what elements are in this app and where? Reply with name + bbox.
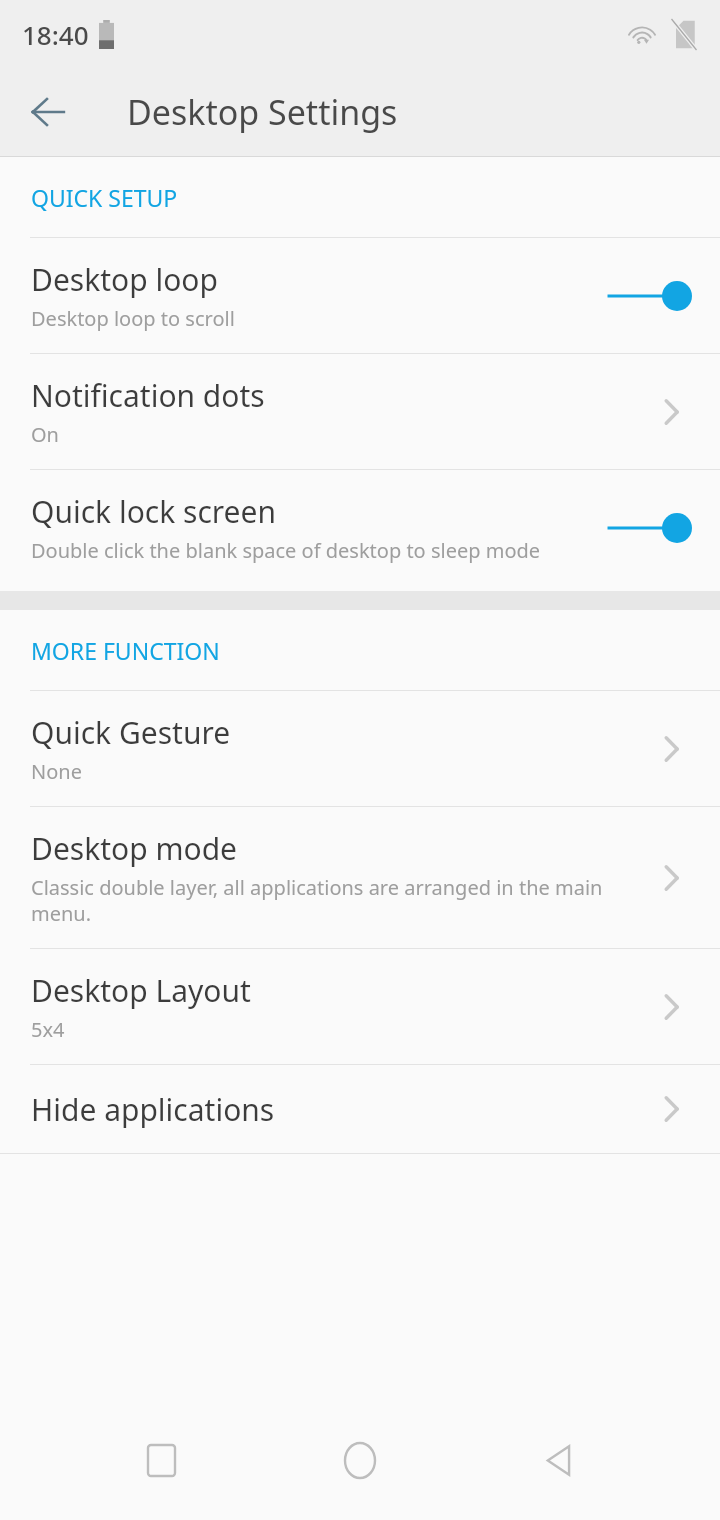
button[interactable]: Desktop Layout <box>0 949 720 1064</box>
staticText: MORE FUNCTION <box>31 635 220 666</box>
button[interactable]: Home <box>322 1422 398 1498</box>
staticText: On <box>31 421 59 448</box>
staticText: QUICK SETUP <box>31 182 178 213</box>
button[interactable]: Desktop mode <box>0 807 720 948</box>
staticText: Desktop loop <box>31 259 218 300</box>
staticText: Desktop Settings <box>127 89 398 135</box>
button[interactable]: Toggle <box>600 271 694 321</box>
staticText: Desktop mode <box>31 828 238 869</box>
staticText: Quick lock screen <box>31 491 276 532</box>
staticText: Quick Gesture <box>31 712 231 753</box>
button[interactable]: Toggle <box>600 503 694 553</box>
button[interactable]: Notification dots <box>0 354 720 469</box>
staticText: Notification dots <box>31 375 265 416</box>
button[interactable]: Recents <box>123 1422 199 1498</box>
button[interactable]: Back <box>16 80 80 144</box>
button[interactable]: Back <box>521 1422 597 1498</box>
other: Open <box>648 726 694 772</box>
staticText: Classic double layer, all applications a… <box>31 874 640 927</box>
staticText: 18:40 <box>22 17 89 52</box>
staticText: Desktop Layout <box>31 970 251 1011</box>
other: Open <box>648 984 694 1030</box>
staticText: None <box>31 758 82 785</box>
button[interactable]: Hide applications <box>0 1065 720 1153</box>
staticText: Hide applications <box>31 1089 275 1130</box>
button[interactable]: Quick Gesture <box>0 691 720 806</box>
button[interactable]: Quick lock screen <box>0 470 720 585</box>
other: Open <box>648 855 694 901</box>
other: Open <box>648 389 694 435</box>
button[interactable]: Desktop loop <box>0 238 720 353</box>
other: Open <box>648 1086 694 1132</box>
staticText: Double click the blank space of desktop … <box>31 537 541 564</box>
staticText: Desktop loop to scroll <box>31 305 235 332</box>
staticText: 5x4 <box>31 1016 65 1043</box>
